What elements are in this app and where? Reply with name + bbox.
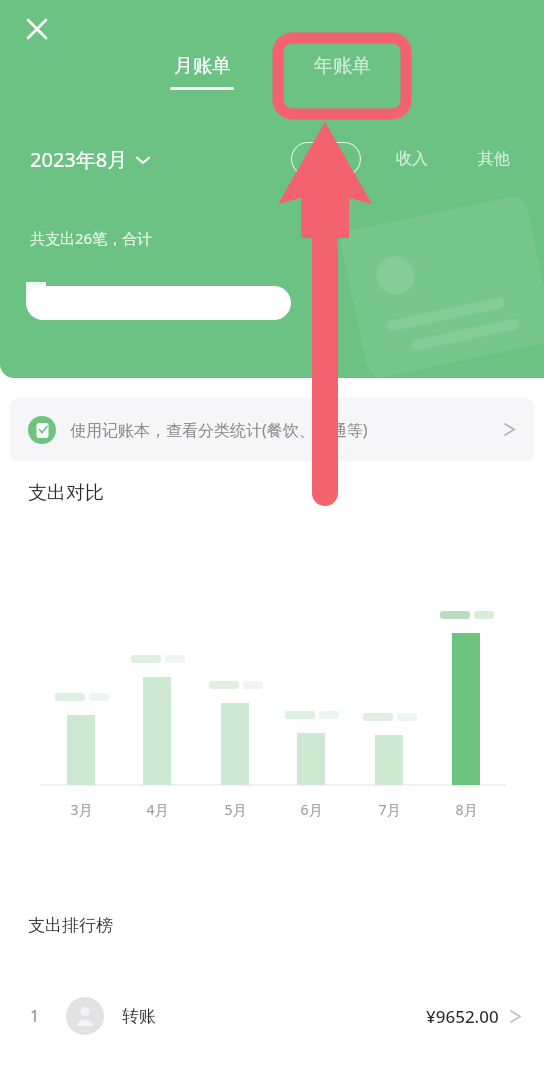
staticText: 支出对比	[28, 481, 104, 505]
staticText: 4月	[146, 800, 169, 819]
staticText: 6月	[300, 800, 323, 819]
staticText: 3月	[70, 800, 93, 819]
button[interactable]: 2023年8月	[30, 146, 150, 173]
staticText: 年账单	[314, 54, 371, 78]
staticText: ¥9652.00	[426, 1005, 499, 1028]
staticText: 收入	[396, 149, 428, 169]
staticText: 其他	[478, 149, 510, 169]
staticText: 7月	[378, 800, 401, 819]
button[interactable]: Close	[14, 6, 60, 52]
button[interactable]: 年账单	[296, 54, 388, 78]
staticText: 使用记账本，查看分类统计(餐饮、交通等)	[70, 419, 368, 441]
staticText: 月账单	[174, 54, 231, 78]
staticText: 支出排行榜	[28, 915, 113, 936]
button[interactable]: 1	[0, 985, 544, 1047]
staticText: 5月	[224, 800, 247, 819]
button[interactable]: 支出	[291, 142, 361, 176]
button[interactable]: 收入	[382, 142, 442, 176]
button[interactable]: 使用记账本，查看分类统计(餐饮、交通等)	[10, 398, 534, 461]
staticText: 支出	[310, 149, 342, 169]
button[interactable]: 月账单	[160, 54, 244, 90]
staticText: 8月	[455, 800, 478, 819]
staticText: 转账	[122, 1006, 156, 1027]
staticText: 1	[30, 1005, 40, 1027]
button[interactable]: 其他	[464, 142, 524, 176]
staticText: 共支出26笔，合计	[30, 228, 153, 248]
staticText: 2023年8月	[30, 146, 128, 173]
